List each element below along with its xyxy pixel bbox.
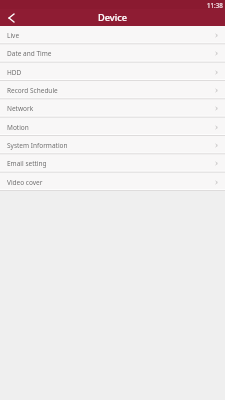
button[interactable]: System Information <box>0 136 225 154</box>
staticText: 11:38 <box>207 1 223 9</box>
button[interactable]: Live <box>0 26 225 44</box>
button[interactable]: Motion <box>0 118 225 136</box>
button[interactable]: Back <box>0 9 22 26</box>
button[interactable]: Network <box>0 99 225 117</box>
button[interactable]: Email setting <box>0 154 225 172</box>
staticText: Network <box>7 104 34 113</box>
staticText: Record Schedule <box>7 86 58 95</box>
staticText: Device <box>98 11 127 24</box>
button[interactable]: Date and Time <box>0 44 225 62</box>
staticText: Date and Time <box>7 49 52 58</box>
button[interactable]: Video cover <box>0 173 225 191</box>
staticText: Live <box>7 31 20 40</box>
button[interactable]: Record Schedule <box>0 81 225 99</box>
staticText: HDD <box>7 68 22 77</box>
staticText: Email setting <box>7 159 47 168</box>
staticText: Video cover <box>7 178 43 187</box>
staticText: System Information <box>7 141 68 150</box>
button[interactable]: HDD <box>0 63 225 81</box>
staticText: Motion <box>7 123 29 132</box>
